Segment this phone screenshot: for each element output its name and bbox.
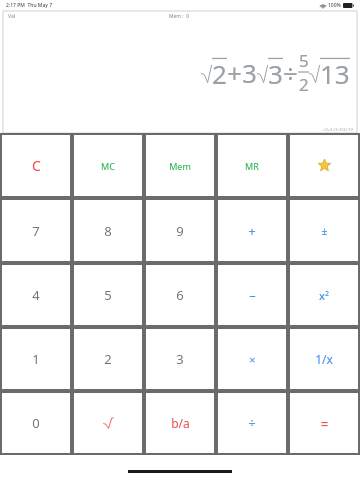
button[interactable]: MC [74,135,142,196]
button[interactable]: MR [218,135,286,196]
staticText: 0 [32,414,40,432]
staticText: Val [8,13,15,20]
button[interactable]: ÷ [218,393,286,453]
staticText: 3 [242,55,257,90]
staticText: 6 [176,286,184,304]
button[interactable]: 4 [2,265,70,325]
staticText: 1 [32,350,40,368]
button[interactable]: ± [290,200,358,261]
button[interactable] [74,393,142,453]
staticText: ÷ [283,55,298,90]
staticText: 8 [104,222,112,240]
button[interactable]: 2 [74,329,142,389]
staticText: 2 [212,56,227,91]
staticText: C [32,156,41,175]
staticText: + [227,55,242,90]
button[interactable]: 5 [74,265,142,325]
staticText: 13 [320,56,350,91]
staticText: Mem : 0 [169,13,190,20]
button[interactable]: × [218,329,286,389]
staticText: 100% [328,2,341,9]
staticText: 2 [104,350,112,368]
staticText: 7 [32,222,40,240]
staticText: 4 [32,286,40,304]
button[interactable]: + [218,200,286,261]
staticText: 5 [104,286,112,304]
button[interactable]: 9 [146,200,214,261]
staticText: × [249,352,256,367]
staticText: Mem [169,160,191,172]
staticText: √2+3√3÷5/2√13 [323,127,353,132]
button[interactable]: x2 [290,265,358,325]
staticText: 5 [299,49,309,72]
button[interactable]: 8 [74,200,142,261]
staticText: ÷ [248,414,256,432]
button[interactable]: 7 [2,200,70,261]
button[interactable]: C [2,135,70,196]
button[interactable]: Mem [146,135,214,196]
button[interactable]: Favorite [290,135,358,196]
button[interactable]: b/a [146,393,214,453]
staticText: 2 [299,73,309,96]
staticText: + [248,222,256,240]
button[interactable]: 0 [2,393,70,453]
staticText: b/a [171,415,190,431]
staticText: 2:17 PM Thu May 7 [6,2,53,9]
staticText: = [320,414,329,433]
button[interactable]: 3 [146,329,214,389]
staticText: 1/x [315,351,333,367]
button[interactable]: 1 [2,329,70,389]
staticText: – [249,286,256,304]
button[interactable]: 6 [146,265,214,325]
button[interactable]: – [218,265,286,325]
button[interactable]: 1/x [290,329,358,389]
staticText: ± [321,223,328,238]
staticText: MR [245,160,259,172]
staticText: MC [101,160,115,172]
staticText: 3 [176,350,184,368]
button[interactable]: = [290,393,358,453]
staticText: 9 [176,222,184,240]
staticText: 3 [268,56,283,91]
staticText: x2 [319,288,329,303]
